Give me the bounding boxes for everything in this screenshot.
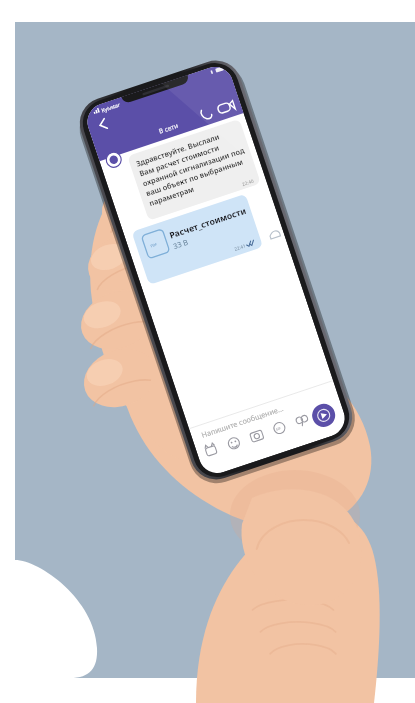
button[interactable]: Viber chat on phone held in hand — [0, 0, 415, 703]
